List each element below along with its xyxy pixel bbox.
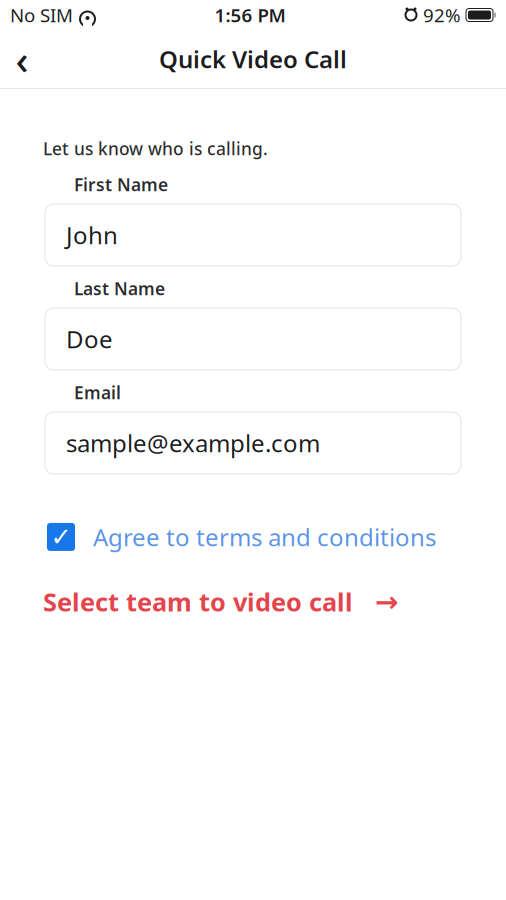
button[interactable]: Back: [0, 37, 44, 81]
staticText: John: [66, 219, 118, 251]
staticText: Quick Video Call: [159, 43, 347, 75]
staticText: sample@example.com: [66, 427, 320, 459]
staticText: Doe: [66, 323, 113, 355]
staticText: ‹: [15, 32, 28, 85]
staticText: Agree to terms and conditions: [93, 521, 436, 553]
staticText: Last Name: [74, 277, 165, 300]
button[interactable]: Select team to video call: [43, 585, 486, 618]
staticText: Select team to video call: [43, 585, 353, 618]
button[interactable]: ✓: [47, 521, 486, 553]
staticText: ✓: [50, 523, 71, 551]
staticText: →: [375, 586, 398, 618]
staticText: Email: [74, 381, 121, 404]
staticText: No SIM: [10, 3, 73, 27]
staticText: 92%: [423, 3, 461, 27]
staticText: Let us know who is calling.: [43, 137, 268, 160]
staticText: First Name: [74, 173, 168, 196]
staticText: 1:56 PM: [214, 3, 285, 27]
